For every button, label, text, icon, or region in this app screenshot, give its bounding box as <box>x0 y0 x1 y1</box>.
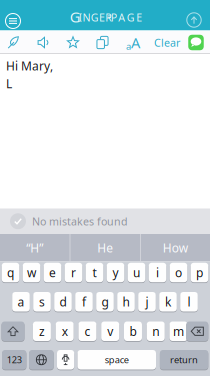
staticText: “H” <box>26 240 43 256</box>
button[interactable]: z <box>33 321 51 341</box>
button[interactable]: He <box>70 234 140 261</box>
button[interactable]: Read aloud <box>37 36 49 48</box>
button[interactable]: i <box>149 262 166 283</box>
staticText: G <box>70 7 81 27</box>
button[interactable]: w <box>23 262 40 283</box>
button[interactable]: p <box>191 262 208 283</box>
staticText: u <box>133 264 140 280</box>
staticText: e <box>49 264 56 280</box>
staticText: s <box>39 294 45 310</box>
staticText: w <box>27 264 36 280</box>
staticText: c <box>84 323 90 339</box>
button[interactable]: j <box>138 291 156 312</box>
staticText: g <box>101 294 108 310</box>
button[interactable]: m <box>169 321 187 341</box>
staticText: Hi Mary, <box>6 58 53 74</box>
button[interactable]: e <box>44 262 61 283</box>
staticText: j <box>145 294 148 310</box>
staticText: How <box>163 240 188 256</box>
button[interactable]: Text style <box>126 33 140 52</box>
button[interactable]: u <box>128 262 145 283</box>
button[interactable]: “H” <box>0 234 70 261</box>
button[interactable]: f <box>75 291 93 312</box>
staticText: t <box>92 264 96 280</box>
staticText: d <box>59 294 66 310</box>
staticText: a <box>126 40 131 52</box>
button[interactable]: How <box>141 234 210 261</box>
button[interactable]: g <box>96 291 114 312</box>
button[interactable]: Messages <box>188 35 204 50</box>
button[interactable]: space <box>77 349 156 370</box>
staticText: return <box>170 354 198 366</box>
button[interactable]: q <box>2 262 19 283</box>
staticText: v <box>107 323 113 339</box>
staticText: PAGE <box>111 10 142 24</box>
staticText: No mistakes found <box>32 214 128 228</box>
staticText: He <box>97 240 113 256</box>
button[interactable]: Shift <box>1 321 24 341</box>
button[interactable]: c <box>78 321 96 341</box>
staticText: l <box>187 294 190 310</box>
staticText: 123 <box>7 354 22 366</box>
button[interactable]: Numbers <box>2 349 26 370</box>
staticText: o <box>175 264 182 280</box>
staticText: y <box>112 264 118 280</box>
button[interactable]: n <box>147 321 165 341</box>
button[interactable]: Clear <box>154 35 180 50</box>
button[interactable]: Upload <box>185 11 202 28</box>
staticText: Clear <box>154 35 180 50</box>
staticText: a <box>17 294 24 310</box>
button[interactable]: return <box>160 349 208 370</box>
staticText: L <box>6 76 12 92</box>
button[interactable]: Documents <box>96 36 108 49</box>
button[interactable]: t <box>86 262 103 283</box>
button[interactable]: h <box>117 291 135 312</box>
staticText: A <box>131 33 140 52</box>
button[interactable]: o <box>170 262 187 283</box>
staticText: r <box>71 264 76 280</box>
button[interactable]: Compose <box>7 36 20 49</box>
staticText: h <box>122 294 129 310</box>
staticText: z <box>39 323 45 339</box>
staticText: b <box>129 323 136 339</box>
button[interactable]: d <box>54 291 72 312</box>
staticText: x <box>62 323 68 339</box>
staticText: m <box>173 323 184 339</box>
staticText: q <box>7 264 14 280</box>
button[interactable]: Menu <box>3 11 23 31</box>
button[interactable]: Dictate <box>57 349 74 370</box>
staticText: i <box>156 264 159 280</box>
button[interactable]: x <box>56 321 74 341</box>
button[interactable]: b <box>124 321 142 341</box>
button[interactable]: y <box>107 262 124 283</box>
staticText: space <box>105 354 129 366</box>
staticText: p <box>196 264 203 280</box>
staticText: k <box>165 294 171 310</box>
button[interactable]: r <box>65 262 82 283</box>
staticText: n <box>152 323 159 339</box>
staticText: f <box>82 294 86 310</box>
button[interactable]: Next keyboard <box>29 349 54 370</box>
button[interactable]: Delete <box>186 321 208 341</box>
button[interactable]: a <box>12 291 30 312</box>
staticText: INGER <box>78 10 112 24</box>
button[interactable]: Favorites <box>67 36 79 49</box>
button[interactable]: l <box>180 291 198 312</box>
button[interactable]: v <box>101 321 119 341</box>
button[interactable]: k <box>159 291 177 312</box>
button[interactable]: s <box>33 291 51 312</box>
